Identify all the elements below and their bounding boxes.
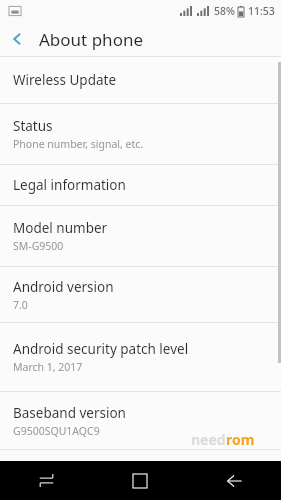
- button[interactable]: Android security patch level: [0, 323, 281, 391]
- button[interactable]: Wireless Update: [0, 57, 281, 103]
- staticText: 58%: [214, 4, 235, 18]
- button[interactable]: Status: [0, 104, 281, 164]
- staticText: Wireless Update: [13, 71, 117, 89]
- button[interactable]: Back: [187, 461, 281, 500]
- staticText: Android version: [13, 278, 114, 296]
- button[interactable]: Legal information: [0, 165, 281, 205]
- button[interactable]: Back: [0, 22, 34, 56]
- button[interactable]: Android version: [0, 267, 281, 322]
- staticText: Phone number, signal, etc.: [13, 137, 144, 151]
- staticText: SM-G9500: [13, 239, 64, 253]
- staticText: G9500SQU1AQC9: [13, 424, 100, 438]
- staticText: need: [191, 430, 226, 449]
- staticText: Legal information: [13, 176, 126, 194]
- staticText: Baseband version: [13, 404, 126, 422]
- staticText: Model number: [13, 219, 108, 237]
- button[interactable]: Baseband version: [0, 392, 281, 449]
- staticText: Android security patch level: [13, 340, 189, 358]
- staticText: 11:53: [248, 4, 275, 18]
- button[interactable]: Model number: [0, 206, 281, 266]
- button[interactable]: Recents: [0, 461, 93, 500]
- staticText: March 1, 2017: [13, 360, 83, 374]
- staticText: 7.0: [13, 298, 28, 312]
- staticText: About phone: [39, 28, 144, 51]
- staticText: Status: [13, 117, 53, 135]
- button[interactable]: Home: [93, 461, 187, 500]
- staticText: rom: [226, 430, 255, 449]
